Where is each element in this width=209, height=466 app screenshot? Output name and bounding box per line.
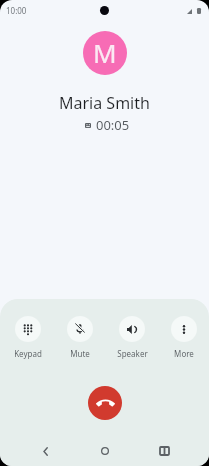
staticText: 10:00 (6, 5, 27, 16)
button[interactable]: Keypad (5, 316, 51, 359)
button[interactable]: Mute (57, 316, 103, 359)
staticText: More (174, 348, 194, 359)
staticText: M (93, 35, 117, 70)
staticText: Mute (70, 348, 90, 359)
button[interactable]: End call (88, 386, 122, 420)
staticText: Keypad (14, 348, 42, 359)
staticText: 00:05 (96, 116, 130, 134)
button[interactable]: More (161, 316, 207, 359)
button[interactable]: Home (90, 436, 120, 466)
button[interactable]: Speaker (109, 316, 155, 359)
button[interactable]: Back (30, 436, 60, 466)
button[interactable]: Recents (149, 436, 179, 466)
staticText: Maria Smith (59, 92, 150, 114)
staticText: Speaker (117, 348, 148, 359)
